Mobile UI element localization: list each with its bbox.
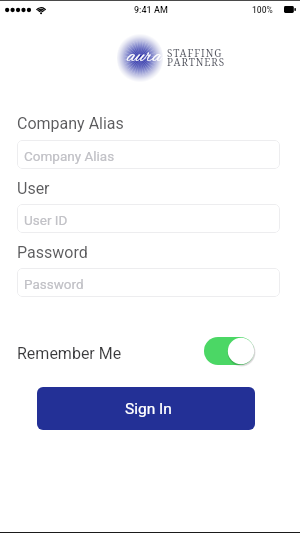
staticText: Remember Me: [17, 344, 122, 363]
staticText: User ID: [24, 212, 68, 228]
button[interactable]: Password: [17, 268, 280, 297]
staticText: User: [17, 179, 50, 198]
staticText: Password: [24, 276, 84, 292]
button[interactable]: Company Alias: [17, 140, 280, 169]
staticText: Company Alias: [24, 148, 115, 164]
other: Battery full: [284, 6, 296, 13]
staticText: aura: [127, 44, 162, 70]
staticText: Company Alias: [17, 114, 124, 133]
button[interactable]: Sign In: [37, 387, 255, 430]
other: Cellular signal: [4, 7, 34, 13]
button[interactable]: Remember Me: [0, 335, 300, 367]
staticText: Sign In: [125, 400, 172, 418]
staticText: 100%: [252, 5, 273, 15]
button[interactable]: Remember Me, on: [202, 335, 256, 367]
staticText: 9:41 AM: [134, 5, 168, 16]
button[interactable]: User ID: [17, 204, 280, 233]
staticText: STAFFING: [167, 46, 223, 60]
other: Wi-Fi: [36, 7, 47, 15]
staticText: Password: [17, 243, 88, 262]
staticText: PARTNERS: [167, 55, 226, 69]
